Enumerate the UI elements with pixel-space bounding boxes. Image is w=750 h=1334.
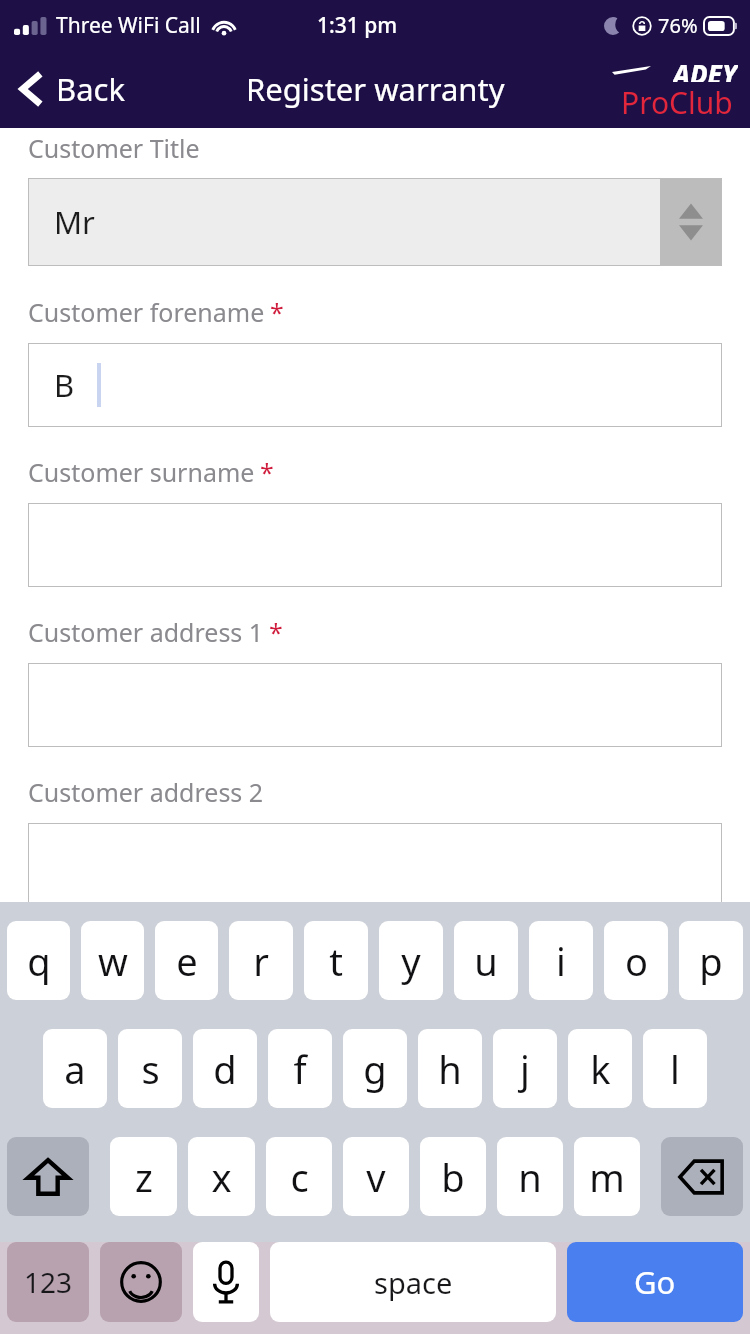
button[interactable]: space — [270, 1242, 556, 1322]
button[interactable]: Mr — [28, 178, 722, 266]
staticText: 76% — [658, 12, 698, 39]
button[interactable]: Emoji — [100, 1242, 182, 1322]
staticText: 123 — [24, 1263, 73, 1301]
button[interactable]: Shift — [7, 1137, 89, 1216]
staticText: Mr — [54, 201, 95, 243]
staticText: Go — [634, 1261, 676, 1303]
button[interactable]: e — [155, 921, 218, 1000]
staticText: u — [474, 935, 498, 987]
staticText: b — [441, 1151, 465, 1203]
button[interactable]: m — [574, 1137, 640, 1216]
button[interactable]: Go — [567, 1242, 743, 1322]
button[interactable]: Voice input — [193, 1242, 259, 1322]
button[interactable]: f — [268, 1029, 332, 1108]
button[interactable]: o — [604, 921, 668, 1000]
button[interactable]: d — [193, 1029, 257, 1108]
button[interactable]: u — [454, 921, 518, 1000]
staticText: c — [290, 1151, 309, 1203]
staticText: q — [27, 935, 51, 987]
staticText: e — [176, 935, 198, 987]
staticText: 1:31 pm — [317, 11, 398, 40]
staticText: m — [589, 1151, 625, 1203]
staticText: x — [211, 1151, 232, 1203]
button[interactable] — [28, 503, 722, 587]
staticText: * — [260, 455, 274, 489]
staticText: a — [64, 1043, 86, 1095]
staticText: h — [438, 1043, 462, 1095]
button[interactable] — [28, 823, 722, 907]
button[interactable]: c — [266, 1137, 332, 1216]
button[interactable]: g — [343, 1029, 407, 1108]
button[interactable]: w — [81, 921, 144, 1000]
button[interactable]: j — [493, 1029, 557, 1108]
staticText: ProClub — [621, 82, 733, 123]
button[interactable]: p — [679, 921, 743, 1000]
staticText: f — [293, 1043, 307, 1095]
button[interactable]: 123 — [7, 1242, 89, 1322]
staticText: Back — [56, 68, 125, 110]
staticText: Customer forename — [28, 295, 265, 329]
staticText: Customer Title — [28, 131, 200, 165]
staticText: j — [520, 1043, 530, 1095]
button[interactable]: t — [304, 921, 368, 1000]
staticText: Customer address 1 — [28, 615, 264, 649]
staticText: d — [213, 1043, 237, 1095]
staticText: ADEY — [673, 56, 738, 82]
staticText: v — [366, 1151, 386, 1203]
staticText: r — [253, 935, 269, 987]
staticText: k — [590, 1043, 611, 1095]
staticText: o — [625, 935, 648, 987]
staticText: t — [329, 935, 343, 987]
button[interactable]: B — [28, 343, 722, 427]
button[interactable]: Backspace — [661, 1137, 743, 1216]
button[interactable]: q — [7, 921, 70, 1000]
button[interactable] — [28, 663, 722, 747]
button[interactable]: n — [497, 1137, 563, 1216]
staticText: y — [401, 935, 421, 987]
staticText: Register warranty — [246, 68, 505, 110]
staticText: z — [135, 1151, 153, 1203]
button[interactable]: z — [110, 1137, 177, 1216]
staticText: * — [269, 615, 283, 649]
staticText: Customer surname — [28, 455, 255, 489]
staticText: p — [699, 935, 723, 987]
button[interactable]: y — [379, 921, 443, 1000]
staticText: i — [556, 935, 566, 987]
staticText: s — [141, 1043, 160, 1095]
button[interactable]: Back — [10, 62, 133, 116]
staticText: w — [98, 935, 128, 987]
button[interactable]: b — [420, 1137, 486, 1216]
button[interactable]: i — [529, 921, 593, 1000]
button[interactable]: v — [343, 1137, 409, 1216]
button[interactable]: k — [568, 1029, 632, 1108]
button[interactable]: h — [418, 1029, 482, 1108]
button[interactable]: x — [188, 1137, 255, 1216]
staticText: Three WiFi Call — [56, 11, 201, 40]
button[interactable]: s — [118, 1029, 182, 1108]
staticText: Customer address 2 — [28, 775, 264, 809]
button[interactable]: r — [229, 921, 293, 1000]
button[interactable]: a — [43, 1029, 107, 1108]
staticText: * — [270, 295, 284, 329]
button[interactable]: l — [643, 1029, 707, 1108]
staticText: l — [670, 1043, 680, 1095]
staticText: g — [363, 1043, 387, 1095]
staticText: space — [374, 1263, 453, 1302]
staticText: n — [518, 1151, 542, 1203]
staticText: B — [54, 364, 75, 406]
